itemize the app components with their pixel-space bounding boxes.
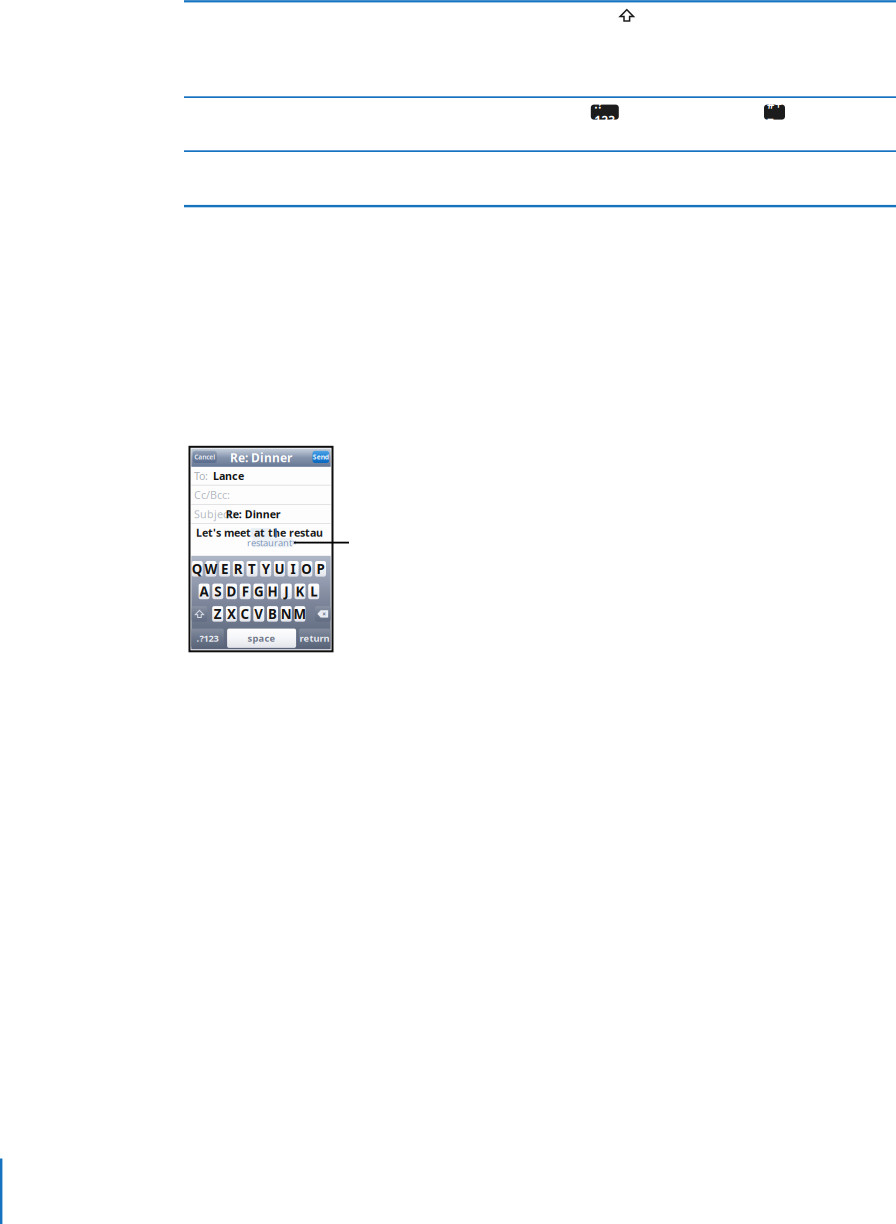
- button[interactable]: I: [0, 0, 896, 1224]
- button[interactable]: return: [0, 0, 896, 1224]
- staticText: #+=: [767, 96, 782, 128]
- button[interactable]: J: [0, 0, 896, 1224]
- button[interactable]: V: [0, 0, 896, 1224]
- staticText: K: [295, 582, 304, 600]
- staticText: T: [248, 560, 256, 578]
- staticText: N: [281, 605, 292, 623]
- button[interactable]: Q: [0, 0, 896, 1224]
- staticText: Y: [262, 560, 270, 578]
- button[interactable]: Y: [0, 0, 896, 1224]
- staticText: F: [242, 582, 249, 600]
- staticText: V: [254, 605, 263, 623]
- staticText: Cancel: [194, 452, 215, 461]
- button[interactable]: H: [0, 0, 896, 1224]
- staticText: Q: [192, 560, 203, 578]
- staticText: ×: [322, 609, 326, 618]
- staticText: ×: [292, 537, 297, 548]
- staticText: M: [293, 605, 306, 623]
- staticText: Send: [313, 452, 329, 461]
- button[interactable]: O: [0, 0, 896, 1224]
- button[interactable]: N: [0, 0, 896, 1224]
- button[interactable]: K: [0, 0, 896, 1224]
- button[interactable]: Z: [0, 0, 896, 1224]
- staticText: D: [226, 582, 236, 600]
- staticText: S: [214, 582, 221, 600]
- button[interactable]: Cancel: [0, 0, 896, 1224]
- staticText: Let's meet at the restau: [196, 525, 323, 540]
- button[interactable]: W: [0, 0, 896, 1224]
- staticText: To:: [194, 469, 208, 483]
- staticText: A: [200, 582, 209, 600]
- staticText: .?123: [594, 96, 615, 128]
- staticText: Z: [214, 605, 222, 623]
- staticText: R: [234, 560, 243, 578]
- button[interactable]: S: [0, 0, 896, 1224]
- button[interactable]: space: [0, 0, 896, 1224]
- staticText: Subject:: [194, 507, 235, 521]
- button[interactable]: Shift: [0, 0, 896, 1224]
- staticText: I: [291, 560, 296, 578]
- staticText: .?123: [197, 632, 219, 644]
- staticText: space: [248, 632, 276, 644]
- button[interactable]: T: [0, 0, 896, 1224]
- staticText: X: [227, 605, 236, 623]
- button[interactable]: U: [0, 0, 896, 1224]
- button[interactable]: X: [0, 0, 896, 1224]
- staticText: G: [254, 582, 264, 600]
- button[interactable]: B: [0, 0, 896, 1224]
- staticText: J: [284, 582, 288, 600]
- button[interactable]: A: [0, 0, 896, 1224]
- button[interactable]: M: [0, 0, 896, 1224]
- button[interactable]: R: [0, 0, 896, 1224]
- staticText: E: [221, 560, 228, 578]
- button[interactable]: G: [0, 0, 896, 1224]
- staticText: C: [241, 605, 250, 623]
- staticText: Cc/Bcc:: [194, 488, 230, 502]
- staticText: L: [310, 582, 317, 600]
- staticText: Lance: [213, 469, 244, 483]
- staticText: return: [300, 632, 330, 644]
- button[interactable]: D: [0, 0, 896, 1224]
- button[interactable]: P: [0, 0, 896, 1224]
- staticText: restaurant: [247, 536, 292, 549]
- button[interactable]: F: [0, 0, 896, 1224]
- staticText: B: [268, 605, 277, 623]
- button[interactable]: L: [0, 0, 896, 1224]
- button[interactable]: Send: [0, 0, 896, 1224]
- button[interactable]: C: [0, 0, 896, 1224]
- staticText: P: [316, 560, 324, 578]
- staticText: W: [204, 560, 217, 578]
- button[interactable]: E: [0, 0, 896, 1224]
- staticText: U: [274, 560, 284, 578]
- staticText: H: [268, 582, 278, 600]
- staticText: Re: Dinner: [226, 507, 281, 521]
- button[interactable]: Delete: [0, 0, 896, 1224]
- button[interactable]: .?123: [0, 0, 896, 1224]
- staticText: Re: Dinner: [230, 450, 292, 466]
- staticText: O: [301, 560, 312, 578]
